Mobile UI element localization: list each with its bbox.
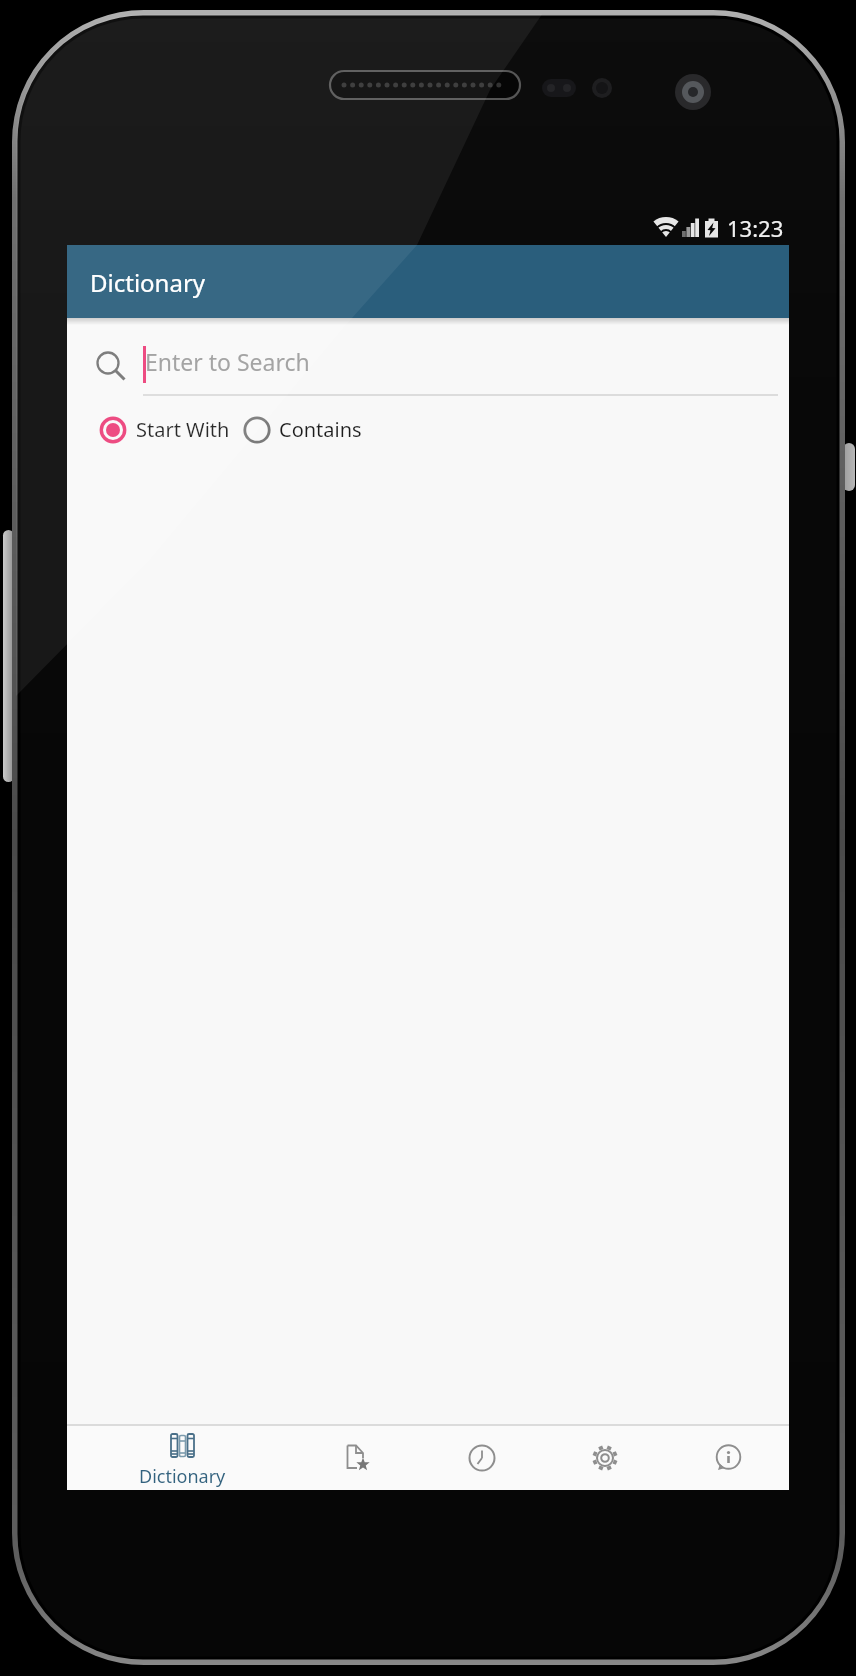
- staticText: Enter to Search: [145, 346, 310, 377]
- staticText: Start With: [136, 416, 230, 443]
- button[interactable]: [420, 1426, 543, 1490]
- button[interactable]: Start With: [97, 413, 277, 447]
- staticText: 13:23: [727, 213, 784, 243]
- button[interactable]: [543, 1426, 666, 1490]
- button[interactable]: [297, 1426, 420, 1490]
- button[interactable]: [666, 1426, 789, 1490]
- button[interactable]: Enter to Search: [77, 333, 777, 398]
- button[interactable]: Dictionary: [67, 1426, 297, 1490]
- staticText: Contains: [279, 416, 362, 443]
- staticText: Dictionary: [139, 1464, 226, 1489]
- button[interactable]: Contains: [241, 413, 411, 447]
- staticText: Dictionary: [90, 266, 206, 299]
